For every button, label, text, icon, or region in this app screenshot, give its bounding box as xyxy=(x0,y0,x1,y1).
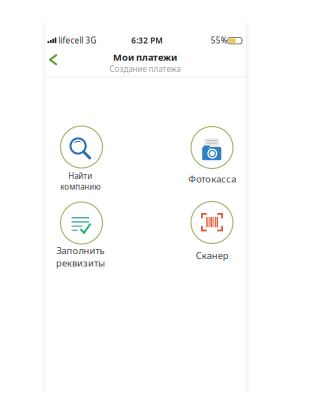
button[interactable]: Сканер xyxy=(170,201,254,275)
button[interactable]: Фотокасса xyxy=(170,126,254,200)
staticText: lifecell 3G xyxy=(58,35,96,46)
staticText: Заполнить реквизиты xyxy=(56,244,105,269)
button[interactable]: Заполнить реквизиты xyxy=(39,202,123,276)
staticText: 6:32 PM xyxy=(131,35,162,46)
staticText: Сканер xyxy=(195,249,228,262)
staticText: Фотокасса xyxy=(188,173,236,185)
button[interactable]: Найти компанию xyxy=(39,126,123,200)
staticText: Мои платежи xyxy=(113,51,177,63)
button[interactable]: Back xyxy=(43,50,63,70)
staticText: Найти компанию xyxy=(60,171,100,192)
staticText: Создание платежа xyxy=(109,64,180,74)
staticText: 55% xyxy=(211,35,228,46)
